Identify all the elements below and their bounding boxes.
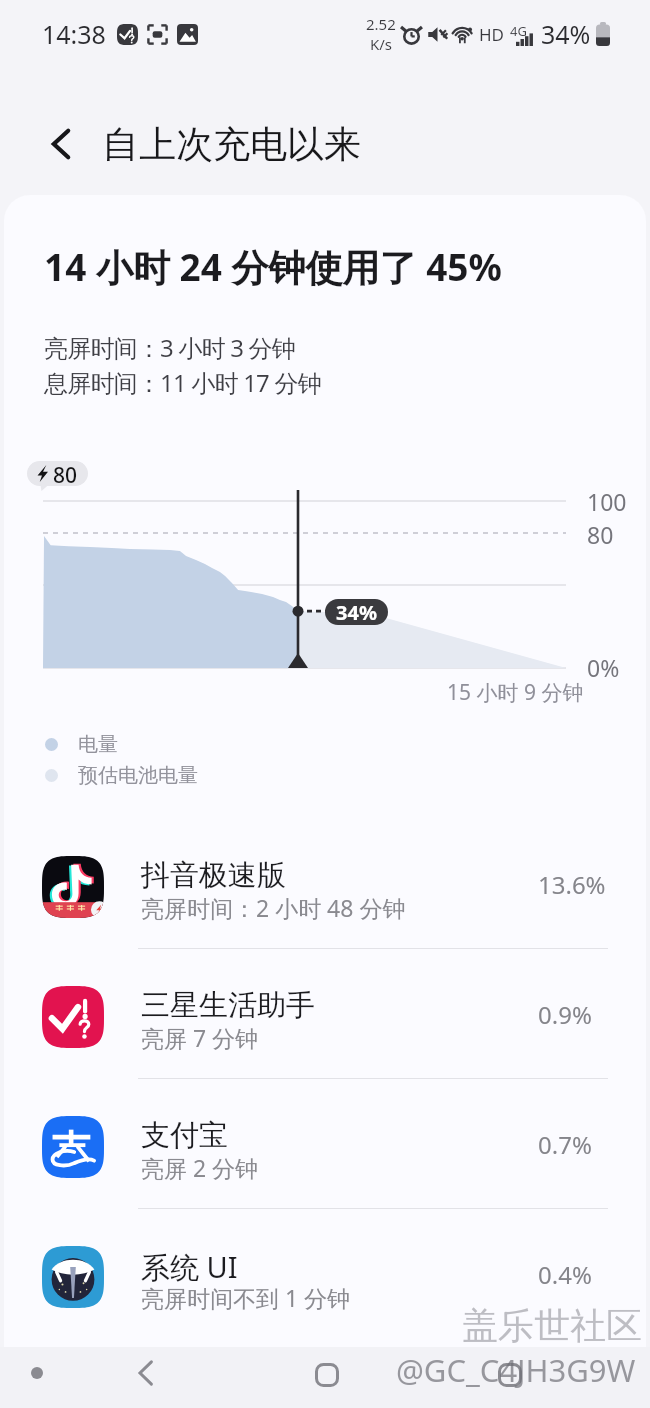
staticText: K/s	[370, 34, 393, 54]
button[interactable]: 支付宝	[4, 1082, 646, 1212]
staticText: 0.9%	[538, 998, 592, 1031]
staticText: 0.7%	[538, 1128, 592, 1161]
button[interactable]: Home	[301, 1349, 353, 1401]
staticText: 预估电池电量	[78, 763, 198, 788]
staticText: 14:38	[42, 17, 106, 51]
button[interactable]: Assistant	[17, 1353, 57, 1393]
staticText: 系统 UI	[141, 1247, 238, 1287]
staticText: 支付宝	[141, 1117, 228, 1154]
staticText: 自上次充电以来	[102, 121, 361, 168]
staticText: 亮屏 2 分钟	[141, 1152, 259, 1183]
button[interactable]: 三星生活助手	[4, 952, 646, 1082]
staticText: 13.6%	[538, 868, 606, 901]
staticText: HD	[479, 23, 505, 46]
button[interactable]: Recent apps	[484, 1349, 536, 1401]
staticText: 2.52	[366, 14, 396, 34]
staticText: 100	[587, 486, 627, 517]
staticText: 抖音极速版	[141, 857, 286, 894]
staticText: 80	[587, 519, 614, 550]
staticText: 电量	[78, 732, 118, 757]
staticText: 三星生活助手	[141, 987, 315, 1024]
staticText: 34%	[541, 17, 591, 51]
button[interactable]: 系统 UI	[4, 1212, 646, 1342]
button[interactable]: 抖音极速版	[4, 822, 646, 952]
staticText: 0.4%	[538, 1258, 592, 1291]
staticText: 盖乐世社区	[462, 1303, 642, 1348]
staticText: 14 小时 24 分钟使用了 45%	[44, 241, 502, 292]
staticText: 4G	[510, 22, 527, 40]
staticText: 息屏时间：11 小时 17 分钟	[44, 366, 321, 399]
staticText: 80	[53, 461, 78, 486]
staticText: 亮屏时间：2 小时 48 分钟	[141, 892, 406, 923]
staticText: 0%	[587, 652, 620, 683]
staticText: @GC_C4JH3G9W	[396, 1349, 636, 1391]
staticText: 亮屏时间：3 小时 3 分钟	[44, 331, 295, 364]
staticText: 亮屏时间不到 1 分钟	[141, 1282, 351, 1313]
staticText: 亮屏 7 分钟	[141, 1022, 259, 1053]
staticText: 15 小时 9 分钟	[447, 678, 584, 707]
staticText: 34%	[336, 599, 377, 625]
button[interactable]: Back	[120, 1347, 172, 1399]
button[interactable]: Back	[33, 116, 89, 172]
